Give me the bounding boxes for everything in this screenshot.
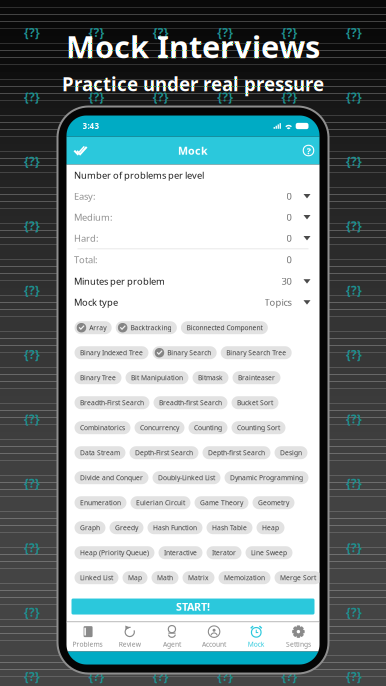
button[interactable]: Biconnected Component	[181, 321, 268, 334]
button[interactable]: Total:	[66, 249, 319, 270]
button[interactable]: Combinatorics	[74, 421, 130, 434]
button[interactable]: Bit Manipulation	[125, 371, 188, 384]
staticText: Counting Sort	[237, 423, 280, 432]
staticText: {?}	[88, 475, 104, 491]
button[interactable]: Bucket Sort	[231, 396, 278, 409]
staticText: Bucket Sort	[237, 398, 273, 407]
staticText: Depth-First Search	[135, 448, 193, 457]
staticText: Interactive	[164, 548, 197, 557]
button[interactable]: Review	[109, 622, 151, 651]
button[interactable]: Mock type	[66, 292, 319, 312]
button[interactable]: Enumeration	[74, 496, 126, 509]
button[interactable]: Dynamic Programming	[224, 471, 308, 484]
button[interactable]: Merge Sort	[274, 571, 321, 584]
button[interactable]: Geometry	[252, 496, 294, 509]
button[interactable]: Math	[151, 571, 178, 584]
button[interactable]: Eulerian Circuit	[130, 496, 190, 509]
button[interactable]: Number of problems per level	[66, 164, 319, 185]
button[interactable]: Backtracking	[116, 321, 177, 334]
staticText: {?}	[24, 282, 40, 298]
button[interactable]: Binary Indexed Tree	[74, 346, 148, 359]
staticText: {?}	[24, 540, 40, 555]
button[interactable]: Hash Table	[206, 521, 252, 534]
button[interactable]: Bitmask	[192, 371, 228, 384]
button[interactable]: Breadth-first Search	[153, 396, 227, 409]
staticText: Breadth-first Search	[159, 398, 222, 407]
button[interactable]: Iterator	[206, 546, 241, 559]
button[interactable]: Memoization	[218, 571, 270, 584]
staticText: {?}	[346, 24, 362, 40]
button[interactable]: Heap (Priority Queue)	[74, 546, 154, 559]
staticText: Matrix	[188, 573, 209, 582]
button[interactable]: Brainteaser	[232, 371, 280, 384]
button[interactable]: Map	[122, 571, 147, 584]
staticText: START!	[176, 599, 210, 614]
staticText: Binary Tree	[80, 373, 116, 382]
staticText: Depth-first Search	[208, 448, 265, 457]
staticText: {?}	[24, 89, 40, 105]
staticText: {?}	[217, 540, 233, 555]
button[interactable]: Depth-First Search	[129, 446, 198, 459]
staticText: {?}	[153, 411, 169, 427]
staticText: Design	[280, 448, 302, 457]
staticText: ?	[306, 144, 310, 157]
staticText: {?}	[24, 153, 40, 169]
staticText: {?}	[346, 218, 362, 233]
staticText: Data Stream	[80, 448, 120, 457]
button[interactable]: Hash Function	[147, 521, 202, 534]
button[interactable]: Mock	[235, 622, 277, 651]
staticText: Practice under real pressure	[62, 72, 324, 96]
button[interactable]: Depth-first Search	[202, 446, 270, 459]
staticText: Account	[202, 640, 226, 648]
button[interactable]: Interactive	[158, 546, 202, 559]
staticText: Bit Manipulation	[131, 373, 183, 382]
staticText: Settings	[286, 640, 311, 648]
button[interactable]: Concurrency	[134, 421, 184, 434]
button[interactable]: Heap	[256, 521, 284, 534]
button[interactable]: Breadth-First Search	[74, 396, 149, 409]
button[interactable]: Problems	[66, 622, 109, 651]
button[interactable]: Greedy	[109, 521, 143, 534]
button[interactable]: Hard:	[66, 227, 319, 248]
button[interactable]: Linked List	[74, 571, 118, 584]
button[interactable]: Binary Search	[152, 346, 217, 359]
staticText: {?}	[282, 89, 298, 105]
button[interactable]: Line Sweep	[245, 546, 292, 559]
button[interactable]: Matrix	[182, 571, 214, 584]
button[interactable]: Settings	[277, 622, 319, 651]
staticText: Line Sweep	[251, 548, 287, 557]
button[interactable]: Binary Tree	[74, 371, 121, 384]
button[interactable]: Account	[193, 622, 235, 651]
button[interactable]: Select all topics	[69, 136, 91, 164]
staticText: 0	[286, 190, 291, 202]
button[interactable]: Counting	[188, 421, 227, 434]
button[interactable]: Counting Sort	[231, 421, 285, 434]
button[interactable]: Array	[74, 321, 112, 334]
button[interactable]: Easy:	[66, 185, 319, 206]
staticText: Easy:	[74, 190, 96, 202]
button[interactable]: Doubly-Linked List	[152, 471, 220, 484]
button[interactable]: START!	[71, 598, 314, 614]
button[interactable]: Data Stream	[74, 446, 125, 459]
staticText: Mock	[248, 640, 265, 648]
staticText: {?}	[88, 24, 104, 40]
staticText: {?}	[153, 89, 169, 105]
button[interactable]: Minutes per problem	[66, 270, 319, 292]
button[interactable]: Divide and Conquer	[74, 471, 148, 484]
button[interactable]: Help	[299, 136, 318, 164]
staticText: {?}	[346, 89, 362, 105]
staticText: {?}	[282, 282, 298, 298]
staticText: Heap (Priority Queue)	[80, 548, 149, 557]
button[interactable]: Agent	[151, 622, 193, 651]
staticText: Eulerian Circuit	[136, 498, 185, 507]
button[interactable]: Graph	[74, 521, 105, 534]
staticText: {?}	[217, 411, 233, 427]
button[interactable]: Medium:	[66, 206, 319, 227]
button[interactable]: Binary Search Tree	[221, 346, 292, 359]
staticText: {?}	[88, 218, 104, 233]
staticText: {?}	[282, 604, 298, 620]
button[interactable]: Design	[274, 446, 307, 459]
button[interactable]: Game Theory	[194, 496, 248, 509]
staticText: Breadth-First Search	[80, 398, 144, 407]
